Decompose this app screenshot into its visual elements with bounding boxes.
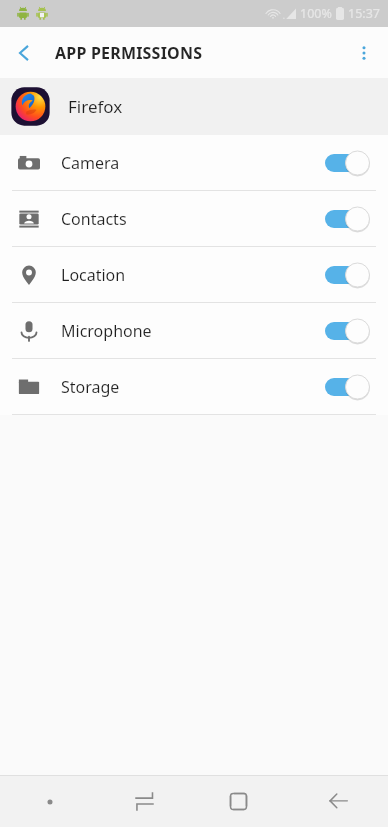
- button[interactable]: Permission enabled: [323, 317, 371, 345]
- staticText: Firefox: [68, 95, 123, 118]
- button[interactable]: Camera: [0, 135, 388, 190]
- button[interactable]: Back: [288, 776, 388, 827]
- staticText: Contacts: [61, 208, 127, 230]
- button[interactable]: Permission enabled: [323, 373, 371, 401]
- button[interactable]: Permission enabled: [323, 205, 371, 233]
- button[interactable]: Permission enabled: [323, 261, 371, 289]
- staticText: APP PERMISSIONS: [55, 42, 203, 64]
- button[interactable]: More options: [340, 29, 388, 77]
- staticText: Location: [61, 264, 126, 286]
- button[interactable]: Microphone: [0, 303, 388, 358]
- button[interactable]: Back: [0, 29, 48, 77]
- button[interactable]: Storage: [0, 359, 388, 414]
- button[interactable]: Home: [188, 776, 288, 827]
- staticText: 15:37: [348, 5, 380, 22]
- staticText: Camera: [61, 152, 120, 174]
- staticText: Microphone: [61, 320, 152, 342]
- button[interactable]: Contacts: [0, 191, 388, 246]
- button[interactable]: Permission enabled: [323, 149, 371, 177]
- button[interactable]: Recents: [100, 776, 188, 827]
- button[interactable]: Location: [0, 247, 388, 302]
- staticText: Storage: [61, 376, 120, 398]
- staticText: 100%: [300, 5, 332, 22]
